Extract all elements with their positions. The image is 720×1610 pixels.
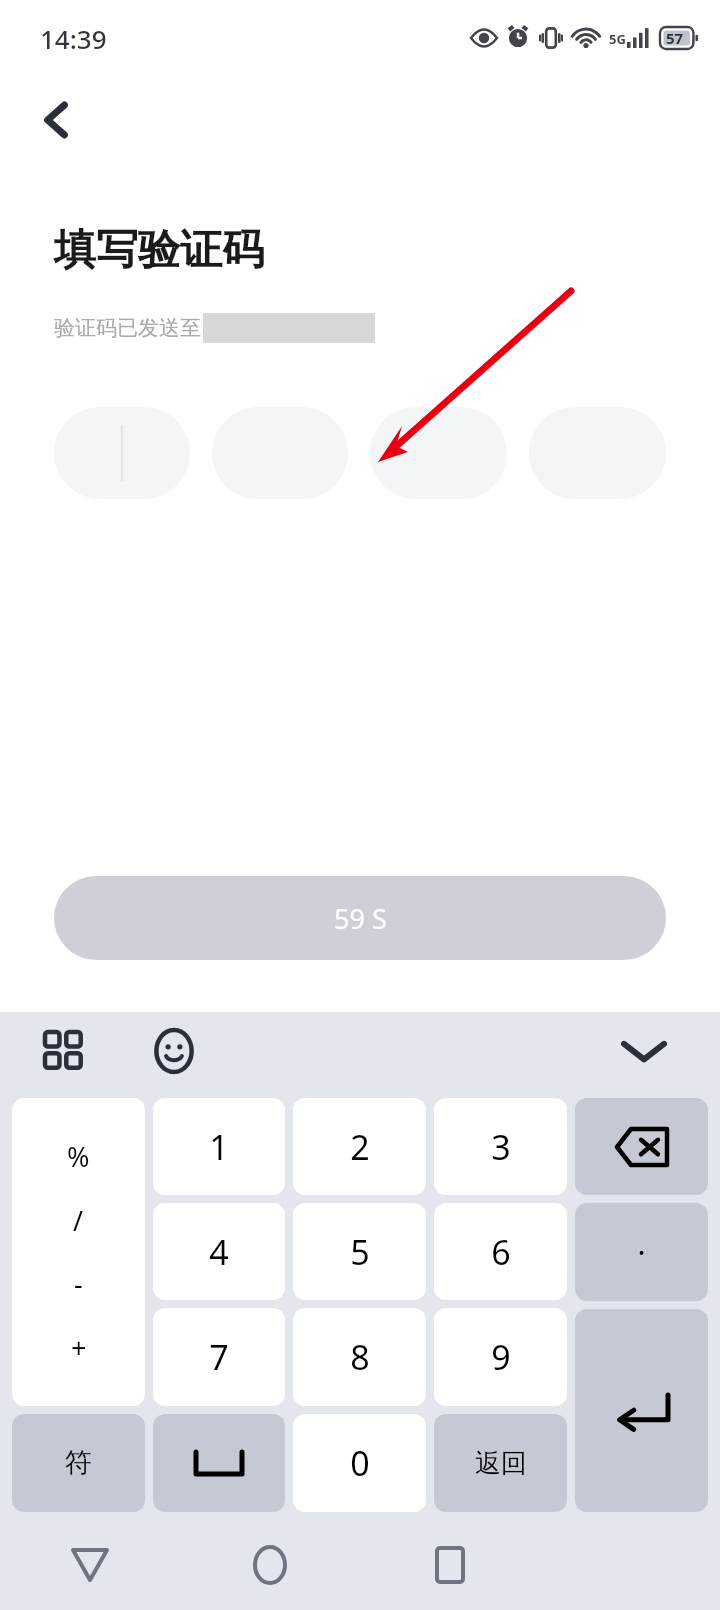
staticText: 2 (350, 1124, 370, 1170)
staticText: 14:39 (40, 21, 107, 56)
button[interactable] (529, 407, 666, 499)
staticText: / (73, 1202, 84, 1239)
button[interactable]: Recents (360, 1520, 540, 1610)
button[interactable]: Back (24, 88, 88, 152)
staticText: 5G (609, 30, 626, 48)
button[interactable]: 4 (153, 1203, 285, 1300)
button[interactable]: 返回 (434, 1414, 567, 1512)
staticText: 8 (350, 1334, 370, 1380)
button[interactable]: 6 (434, 1203, 567, 1300)
button[interactable]: Hide keyboard (616, 1023, 672, 1079)
button[interactable]: Space (153, 1414, 285, 1512)
button[interactable]: 7 (153, 1308, 285, 1406)
staticText: 3 (491, 1124, 511, 1170)
button[interactable]: % (12, 1098, 145, 1406)
staticText: 1 (209, 1124, 229, 1170)
button[interactable] (54, 407, 190, 499)
staticText: 9 (491, 1334, 511, 1380)
staticText: 57 (666, 28, 684, 48)
staticText: 4 (209, 1229, 229, 1275)
button[interactable]: 9 (434, 1308, 567, 1406)
button[interactable]: Enter (575, 1309, 708, 1512)
staticText: + (71, 1329, 87, 1366)
button[interactable]: · (575, 1203, 708, 1301)
button[interactable]: 8 (293, 1308, 426, 1406)
staticText: % (67, 1138, 90, 1175)
button[interactable]: 5 (293, 1203, 426, 1300)
staticText: 符 (65, 1446, 92, 1480)
staticText: 填写验证码 (54, 224, 264, 277)
staticText: 5 (350, 1229, 370, 1275)
button[interactable]: Backspace (575, 1098, 708, 1195)
staticText: · (637, 1232, 646, 1273)
button[interactable] (212, 407, 348, 499)
button[interactable]: 3 (434, 1098, 567, 1195)
button[interactable]: 59 S (54, 876, 666, 960)
button[interactable]: 0 (293, 1414, 426, 1512)
button[interactable]: Home (180, 1520, 360, 1610)
button[interactable] (370, 407, 507, 499)
button[interactable]: 符 (12, 1414, 145, 1512)
staticText: - (74, 1265, 83, 1302)
staticText: 59 S (334, 900, 387, 937)
staticText: 7 (209, 1334, 229, 1380)
button[interactable]: 2 (293, 1098, 426, 1195)
staticText: 验证码已发送至 (54, 315, 201, 341)
button[interactable]: Emoji (146, 1023, 202, 1079)
button[interactable]: Keyboard layouts (36, 1023, 92, 1079)
button[interactable]: Back (0, 1520, 180, 1610)
staticText: 返回 (475, 1447, 527, 1480)
staticText: 0 (350, 1440, 370, 1486)
button[interactable]: 1 (153, 1098, 285, 1195)
staticText: 6 (491, 1229, 511, 1275)
